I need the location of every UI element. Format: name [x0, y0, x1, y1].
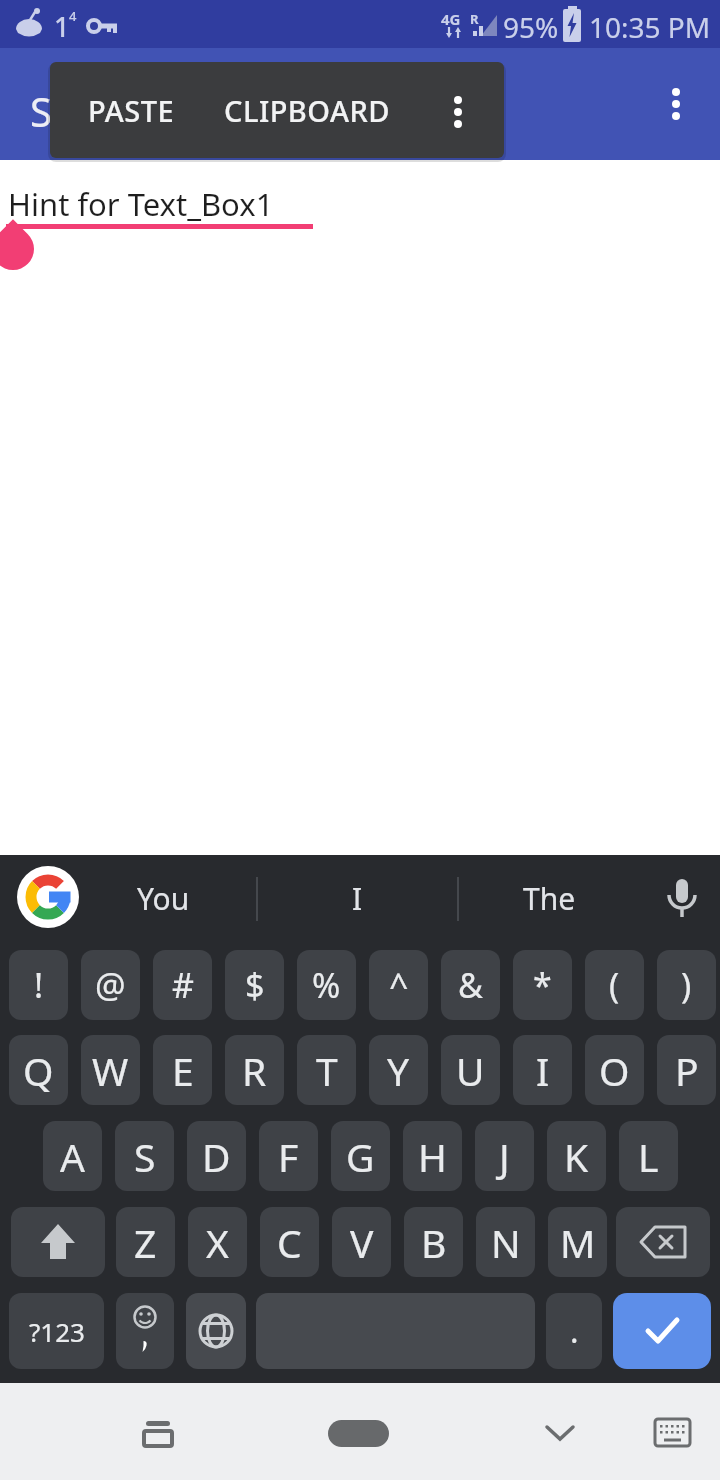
button[interactable]: O	[585, 1035, 644, 1105]
button[interactable]: %	[297, 950, 356, 1020]
staticText: I	[352, 878, 363, 919]
button[interactable]	[127, 1403, 187, 1463]
button[interactable]	[641, 1403, 701, 1463]
button[interactable]: R	[225, 1035, 284, 1105]
staticText: 4	[69, 7, 77, 25]
staticText: N	[491, 1216, 521, 1269]
button[interactable]: You	[123, 868, 203, 928]
button[interactable]	[116, 1293, 174, 1369]
button[interactable]: (	[585, 950, 644, 1020]
staticText: R	[242, 1044, 267, 1097]
staticText: C	[277, 1216, 302, 1269]
button[interactable]: E	[153, 1035, 212, 1105]
staticText: V	[350, 1216, 374, 1269]
staticText: Z	[134, 1216, 157, 1269]
staticText: &	[458, 962, 483, 1008]
button[interactable]	[11, 1207, 105, 1277]
staticText: W	[92, 1044, 129, 1097]
staticText: A	[60, 1130, 85, 1183]
staticText: CLIPBOARD	[224, 91, 391, 130]
staticText: PASTE	[88, 91, 175, 130]
button[interactable]	[434, 88, 482, 136]
staticText: D	[202, 1130, 231, 1183]
staticText: *	[533, 962, 552, 1008]
button[interactable]	[616, 1207, 710, 1277]
button[interactable]: U	[441, 1035, 500, 1105]
button[interactable]: &	[441, 950, 500, 1020]
button[interactable]: A	[43, 1121, 102, 1191]
button[interactable]: W	[81, 1035, 140, 1105]
staticText: R	[470, 10, 479, 28]
staticText: Q	[23, 1044, 54, 1097]
button[interactable]	[186, 1293, 246, 1369]
button[interactable]: !	[9, 950, 68, 1020]
button[interactable]: #	[153, 950, 212, 1020]
staticText: @	[95, 962, 126, 1008]
button[interactable]	[613, 1293, 711, 1369]
staticText: P	[675, 1044, 699, 1097]
staticText: #	[172, 962, 194, 1008]
button[interactable]: ?123	[9, 1293, 104, 1369]
button[interactable]: )	[657, 950, 716, 1020]
button[interactable]: *	[513, 950, 572, 1020]
staticText: S	[30, 84, 52, 138]
button[interactable]: I	[513, 1035, 572, 1105]
button[interactable]: G	[331, 1121, 390, 1191]
staticText: (	[609, 962, 620, 1008]
staticText: $	[245, 962, 265, 1008]
staticText: H	[418, 1130, 447, 1183]
button[interactable]: Y	[369, 1035, 428, 1105]
button[interactable]: Q	[9, 1035, 68, 1105]
button[interactable]: $	[225, 950, 284, 1020]
staticText: U	[456, 1044, 485, 1097]
staticText: E	[172, 1044, 194, 1097]
staticText: )	[681, 962, 692, 1008]
staticText: !	[34, 962, 44, 1008]
staticText: O	[599, 1044, 630, 1097]
staticText: S	[134, 1130, 156, 1183]
button[interactable]	[530, 1403, 590, 1463]
button[interactable]: S	[115, 1121, 174, 1191]
button[interactable]: L	[619, 1121, 678, 1191]
staticText: %	[312, 962, 341, 1008]
button[interactable]: B	[404, 1207, 463, 1277]
staticText: G	[346, 1130, 375, 1183]
button[interactable]: @	[81, 950, 140, 1020]
button[interactable]: M	[548, 1207, 607, 1277]
staticText: L	[638, 1130, 659, 1183]
staticText: Hint for Text_Box1	[8, 183, 274, 225]
button[interactable]: D	[187, 1121, 246, 1191]
button[interactable]: X	[188, 1207, 247, 1277]
button[interactable]	[17, 866, 79, 928]
button[interactable]: PASTE	[66, 74, 196, 146]
staticText: I	[536, 1044, 550, 1097]
staticText: 95%	[503, 8, 559, 46]
staticText: F	[278, 1130, 299, 1183]
staticText: The	[523, 878, 576, 919]
button[interactable]	[652, 80, 700, 128]
staticText: T	[316, 1044, 338, 1097]
button[interactable]: I	[317, 868, 397, 928]
button[interactable]: F	[259, 1121, 318, 1191]
button[interactable]: CLIPBOARD	[210, 74, 405, 146]
staticText: ^	[389, 962, 409, 1008]
staticText: ?123	[29, 1314, 85, 1349]
button[interactable]: N	[476, 1207, 535, 1277]
button[interactable]: C	[260, 1207, 319, 1277]
button[interactable]: J	[475, 1121, 534, 1191]
button[interactable]	[328, 1420, 389, 1447]
staticText: M	[560, 1216, 596, 1269]
button[interactable]: K	[547, 1121, 606, 1191]
staticText: 4G	[441, 9, 461, 29]
button[interactable]: .	[546, 1293, 602, 1369]
button[interactable]: T	[297, 1035, 356, 1105]
button[interactable]: H	[403, 1121, 462, 1191]
staticText: Y	[387, 1044, 410, 1097]
button[interactable]: The	[509, 868, 589, 928]
button[interactable]: ^	[369, 950, 428, 1020]
staticText: J	[499, 1130, 510, 1183]
button[interactable]: Z	[116, 1207, 175, 1277]
button[interactable]: P	[657, 1035, 716, 1105]
button[interactable]: V	[332, 1207, 391, 1277]
